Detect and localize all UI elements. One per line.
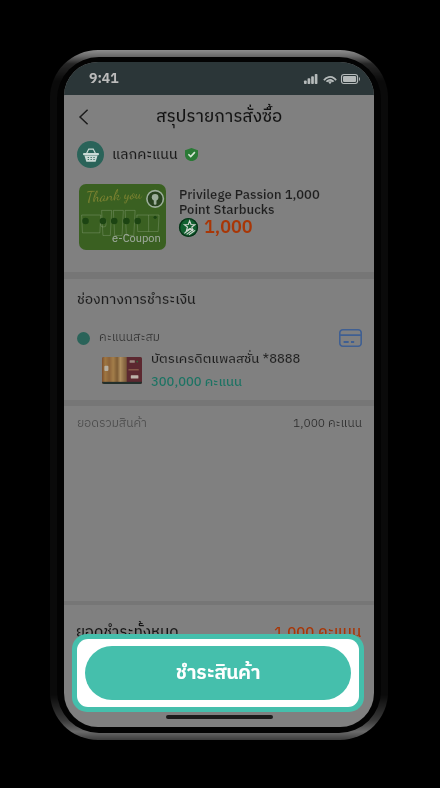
staticText: ยอดรวมสินค้า [77,414,147,434]
staticText: 1,000 คะแนน [274,620,362,645]
staticText: ยอดชำระทั้งหมด [76,620,179,645]
button[interactable]: ชำระสินค้า [85,646,351,700]
staticText: 1,000 [204,213,253,242]
staticText: e-Coupon [112,230,161,248]
staticText: บัตรเครดิตแพลสชั่น *8888 [151,348,301,369]
staticText: 300,000 คะแนน [151,371,243,392]
staticText: แลกคะแนน [112,143,178,166]
staticText: ช่องทางการชำระเงิน [77,288,196,311]
staticText: Thank you [85,184,142,206]
staticText: คะแนนสะสม [99,328,160,348]
button[interactable]: Back [67,100,101,134]
staticText: 1,000 คะแนน [293,414,362,434]
staticText: Privilege Passion 1,000 Point Starbucks [179,184,320,221]
staticText: ชำระสินค้า [176,658,261,689]
button[interactable]: Change payment method [339,329,362,347]
staticText: สรุปรายการสั่งซื้อ [156,103,283,131]
staticText: 9:41 [89,67,119,90]
